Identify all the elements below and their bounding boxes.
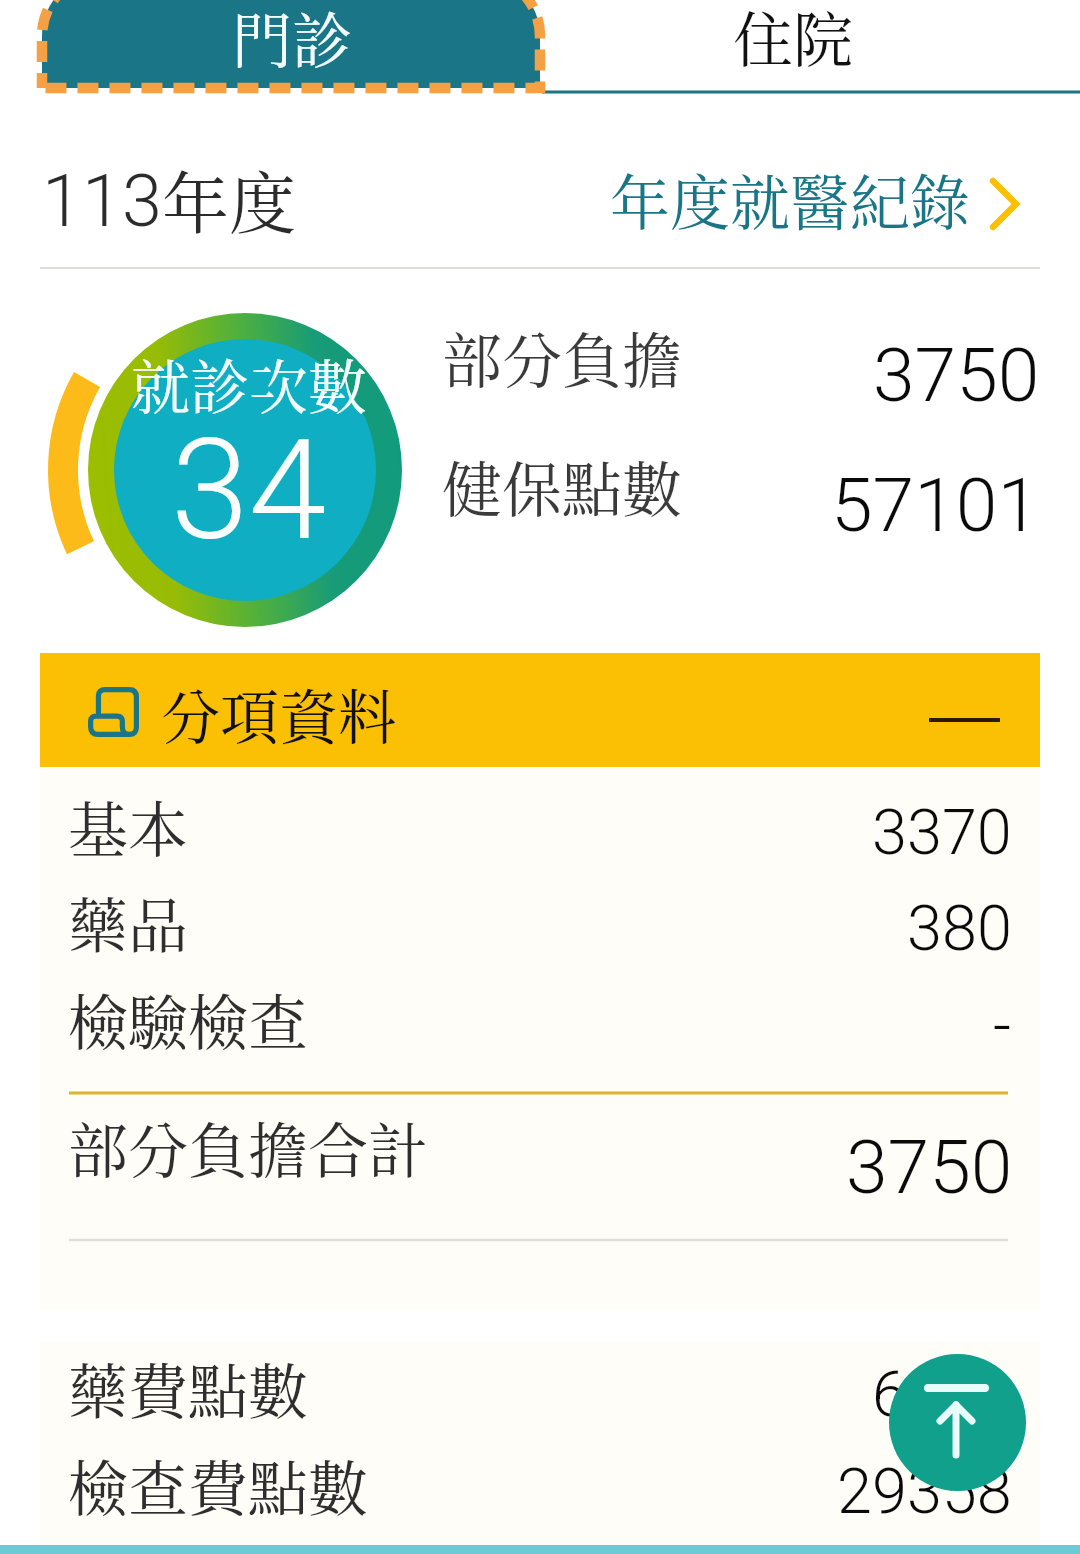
button[interactable]: Scroll to top	[889, 1354, 1026, 1491]
staticText: 3750	[873, 331, 1040, 419]
staticText: 113	[42, 159, 162, 243]
staticText: 住院	[733, 0, 853, 79]
staticText: 檢查費點數	[68, 1442, 368, 1528]
staticText: 分項資料	[161, 671, 398, 756]
button[interactable]: 檢驗檢查	[40, 964, 1040, 1054]
staticText: 部分負擔合計	[68, 1104, 428, 1190]
staticText: 6240	[872, 1358, 1012, 1432]
button[interactable]: 門診	[0, 0, 542, 96]
staticText: 藥品	[68, 879, 188, 965]
staticText: 57101	[831, 461, 1040, 549]
staticText: 就診次數	[131, 341, 368, 426]
button[interactable]: 基本	[40, 771, 1040, 861]
staticText: 380	[907, 892, 1012, 966]
staticText: 檢驗檢查	[68, 976, 308, 1062]
staticText: 34	[171, 408, 327, 572]
button[interactable]: 年度就醫紀錄	[610, 156, 1023, 242]
staticText: 年度	[162, 151, 296, 247]
button[interactable]: 藥品	[40, 867, 1040, 957]
staticText: 門診	[232, 0, 352, 80]
staticText: 3370	[872, 796, 1012, 870]
staticText: 年度就醫紀錄	[610, 156, 970, 242]
staticText: 藥費點數	[68, 1345, 308, 1431]
staticText: 29358	[837, 1455, 1012, 1529]
staticText: 3750	[846, 1123, 1013, 1211]
button[interactable]: 藥費點數	[40, 1333, 1040, 1423]
button[interactable]: 檢查費點數	[40, 1430, 1040, 1520]
staticText: 部分負擔	[442, 314, 682, 400]
button[interactable]: 分項資料	[40, 653, 1040, 767]
button[interactable]: 住院	[542, 0, 1080, 96]
staticText: 健保點數	[442, 443, 682, 529]
staticText: 基本	[68, 783, 188, 869]
staticText: -	[993, 989, 1012, 1063]
